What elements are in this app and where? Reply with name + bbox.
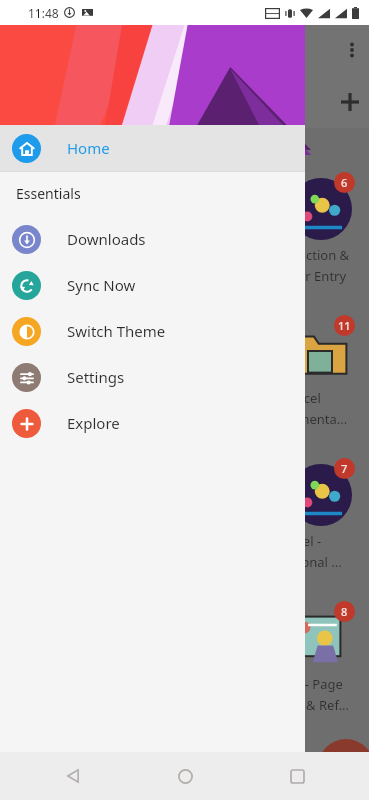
button[interactable]: Add <box>335 87 365 117</box>
staticText: 11:48 <box>28 5 59 21</box>
button[interactable]: Create <box>318 739 369 795</box>
staticText: d - Page <box>290 675 343 693</box>
button[interactable]: Recent apps <box>241 752 353 800</box>
staticText: 11 <box>338 318 351 333</box>
button[interactable]: Home <box>129 752 241 800</box>
staticText: 6 <box>341 175 348 190</box>
button[interactable]: More options <box>341 39 363 61</box>
staticText: Downloads <box>67 229 146 249</box>
button[interactable]: Back <box>17 752 129 800</box>
staticText: Essentials <box>16 184 81 203</box>
button[interactable]: Sync Now <box>0 262 305 308</box>
staticText: Settings <box>67 367 125 387</box>
button[interactable]: Settings <box>0 354 305 400</box>
staticText: xcel - <box>290 532 322 550</box>
button[interactable]: Explore <box>0 400 305 446</box>
staticText: Switch Theme <box>67 321 166 341</box>
button[interactable]: Downloads <box>0 216 305 262</box>
button[interactable]: Home <box>0 125 305 171</box>
staticText: her Entry <box>290 267 347 285</box>
staticText: Excel <box>290 389 321 407</box>
staticText: ut & Ref... <box>290 696 350 714</box>
staticText: Home <box>67 138 110 158</box>
staticText: itional ... <box>290 553 342 571</box>
staticText: Explore <box>67 413 120 433</box>
staticText: amenta... <box>290 410 348 428</box>
button[interactable]: Switch Theme <box>0 308 305 354</box>
staticText: 8 <box>341 604 348 619</box>
staticText: duction & <box>290 246 350 264</box>
staticText: Sync Now <box>67 275 136 295</box>
staticText: 7 <box>341 461 348 476</box>
